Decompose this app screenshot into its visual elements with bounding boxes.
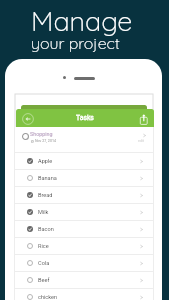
button[interactable]: Beef	[15, 272, 153, 288]
button[interactable]: Share	[138, 112, 150, 124]
staticText: Apple	[38, 158, 53, 165]
staticText: Shopping	[30, 131, 53, 137]
button[interactable]: Bread	[15, 187, 153, 203]
button[interactable]: Banana	[15, 170, 153, 186]
staticText: Tasks	[76, 114, 94, 122]
staticText: your project	[31, 33, 120, 53]
button[interactable]: Apple	[15, 153, 153, 169]
button[interactable]: Rice	[15, 238, 153, 254]
staticText: Cola	[38, 260, 50, 267]
button[interactable]: Milk	[15, 204, 153, 220]
staticText: Bread	[38, 192, 53, 199]
button[interactable]: chicken	[15, 289, 153, 300]
button[interactable]: Back	[22, 113, 34, 125]
staticText: Nov 27, 2014	[35, 139, 56, 143]
button[interactable]: Shopping	[15, 127, 153, 152]
staticText: Banana	[38, 175, 57, 182]
staticText: Manage	[31, 4, 133, 38]
button[interactable]: Cola	[15, 255, 153, 271]
staticText: Beef	[38, 277, 50, 284]
staticText: Milk	[38, 209, 49, 216]
staticText: Bacon	[38, 226, 54, 233]
staticText: edit	[138, 139, 144, 143]
staticText: Rice	[38, 243, 49, 250]
button[interactable]: Bacon	[15, 221, 153, 237]
staticText: chicken	[38, 294, 58, 300]
